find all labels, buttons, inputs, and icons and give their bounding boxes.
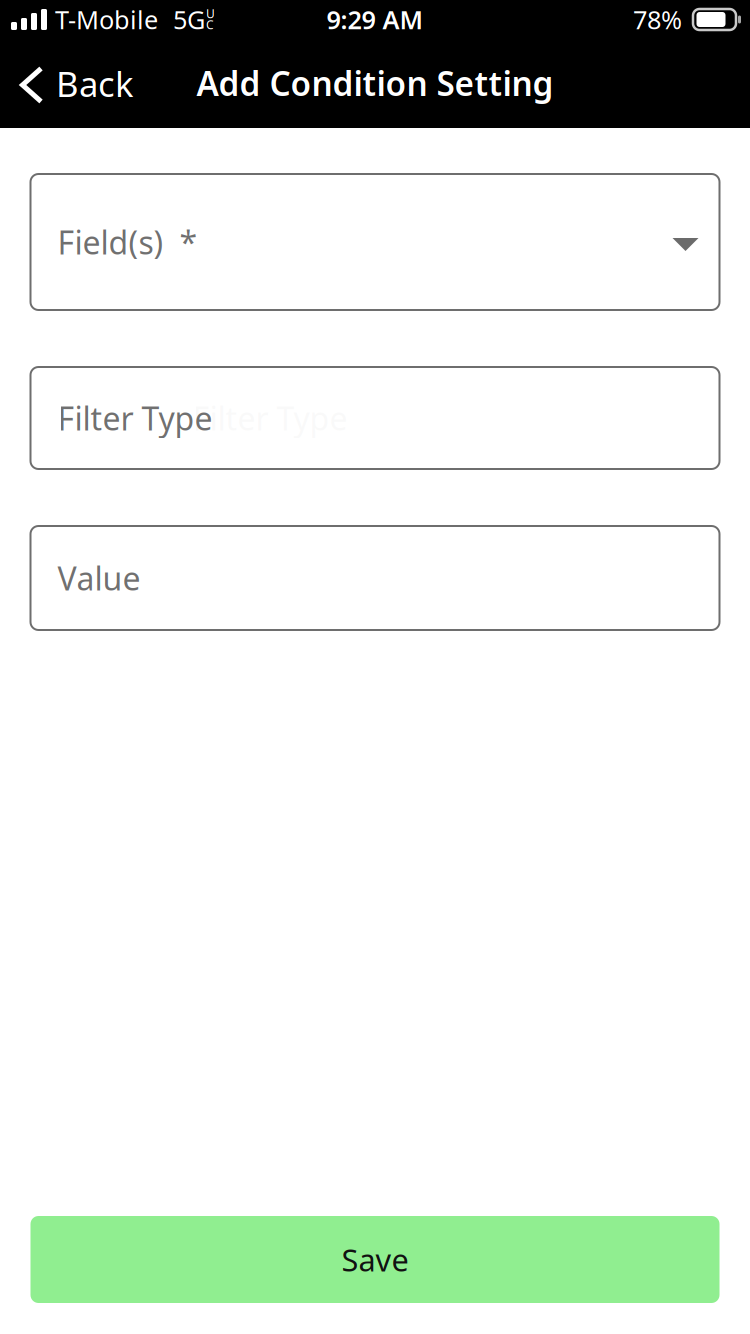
button[interactable]: Back (0, 44, 154, 128)
staticText: U (206, 6, 215, 22)
staticText: C (206, 17, 214, 32)
staticText: 9:29 AM (326, 3, 423, 36)
button[interactable]: Filter Type (30, 367, 719, 469)
staticText: Value (57, 557, 140, 599)
button[interactable]: Save (30, 1216, 719, 1303)
staticText: Save (341, 1239, 408, 1280)
button[interactable]: Value (30, 526, 719, 630)
staticText: Back (56, 60, 134, 106)
staticText: 5G (173, 3, 205, 36)
staticText: T-Mobile (55, 3, 158, 36)
staticText: Add Condition Setting (196, 61, 553, 105)
staticText: Field(s) * (57, 221, 197, 263)
staticText: Filter Type (57, 397, 212, 439)
button[interactable]: Field(s) * (30, 174, 719, 310)
staticText: Filter Type (192, 397, 347, 439)
staticText: 78% (633, 3, 682, 36)
